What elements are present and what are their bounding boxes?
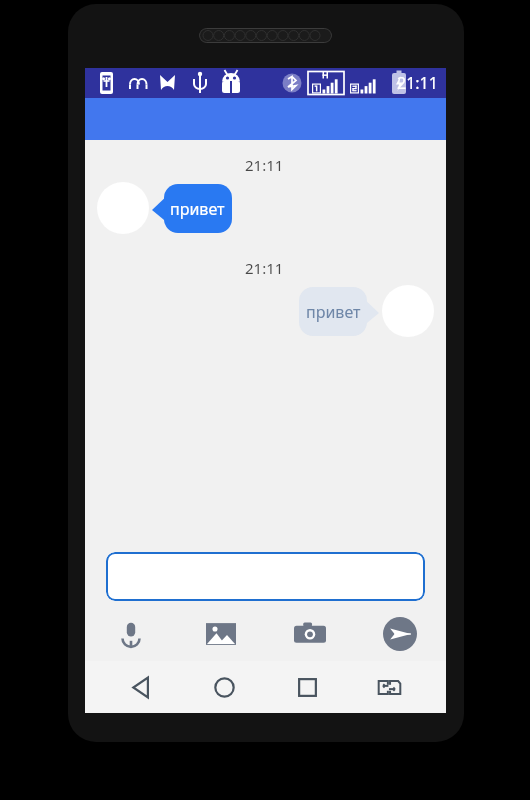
staticText: 21:11 xyxy=(245,258,284,278)
button[interactable]: привет xyxy=(152,184,232,233)
button[interactable]: Contact avatar xyxy=(97,182,149,234)
staticText: привет xyxy=(306,301,361,323)
button[interactable]: Message input xyxy=(106,552,425,601)
button[interactable]: Home xyxy=(198,661,250,713)
staticText: 21:11 xyxy=(397,72,438,94)
button[interactable]: Recent apps xyxy=(281,661,333,713)
button[interactable]: Take photo xyxy=(288,612,332,656)
button[interactable]: Switch screen xyxy=(363,661,415,713)
button[interactable]: Send message xyxy=(378,612,422,656)
button[interactable]: Record voice message xyxy=(109,612,153,656)
button[interactable]: привет xyxy=(299,287,379,336)
staticText: 21:11 xyxy=(245,155,284,175)
staticText: привет xyxy=(170,198,225,220)
button[interactable]: Back xyxy=(116,661,168,713)
button[interactable]: Contact avatar xyxy=(382,285,434,337)
button[interactable]: Attach image xyxy=(199,612,243,656)
